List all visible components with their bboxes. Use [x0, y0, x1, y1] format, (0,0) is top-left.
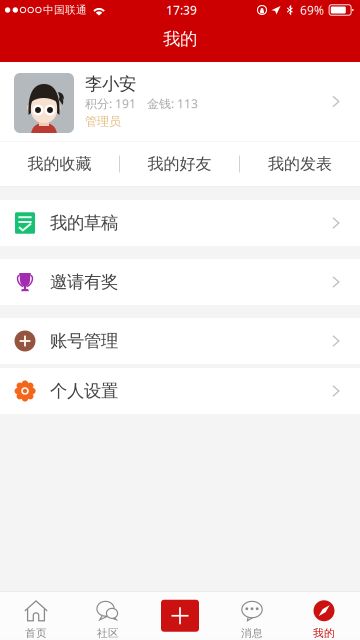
button[interactable]: 我的好友: [120, 141, 239, 186]
staticText: 我的: [163, 28, 197, 50]
staticText: 我的发表: [268, 154, 332, 174]
button[interactable]: 邀请有奖: [0, 259, 360, 305]
staticText: 我的收藏: [27, 154, 91, 174]
staticText: 金钱: 113: [147, 95, 198, 111]
button[interactable]: 账号管理: [0, 318, 360, 364]
button[interactable]: 社区: [72, 592, 144, 640]
staticText: 中国联通: [43, 3, 87, 16]
staticText: 积分: 191: [85, 95, 136, 111]
button[interactable]: 我的发表: [240, 141, 360, 186]
button[interactable]: 发布: [144, 592, 216, 640]
staticText: 个人设置: [50, 380, 118, 402]
staticText: 69%: [300, 2, 324, 18]
staticText: 消息: [241, 627, 263, 640]
button[interactable]: 首页: [0, 592, 72, 640]
button[interactable]: 个人设置: [0, 368, 360, 414]
staticText: 账号管理: [50, 330, 118, 352]
staticText: 邀请有奖: [50, 271, 118, 293]
button[interactable]: 我的: [288, 592, 360, 640]
staticText: 李小安: [85, 73, 136, 95]
button[interactable]: 我的收藏: [0, 141, 119, 186]
staticText: 我的好友: [147, 154, 211, 174]
button[interactable]: 李小安: [0, 62, 360, 141]
staticText: 我的: [313, 627, 335, 640]
staticText: 17:39: [166, 2, 197, 18]
staticText: 社区: [97, 627, 119, 640]
staticText: 我的草稿: [50, 212, 118, 234]
button[interactable]: 消息: [216, 592, 288, 640]
staticText: 首页: [25, 627, 47, 640]
staticText: 管理员: [85, 114, 121, 129]
button[interactable]: 我的草稿: [0, 200, 360, 246]
